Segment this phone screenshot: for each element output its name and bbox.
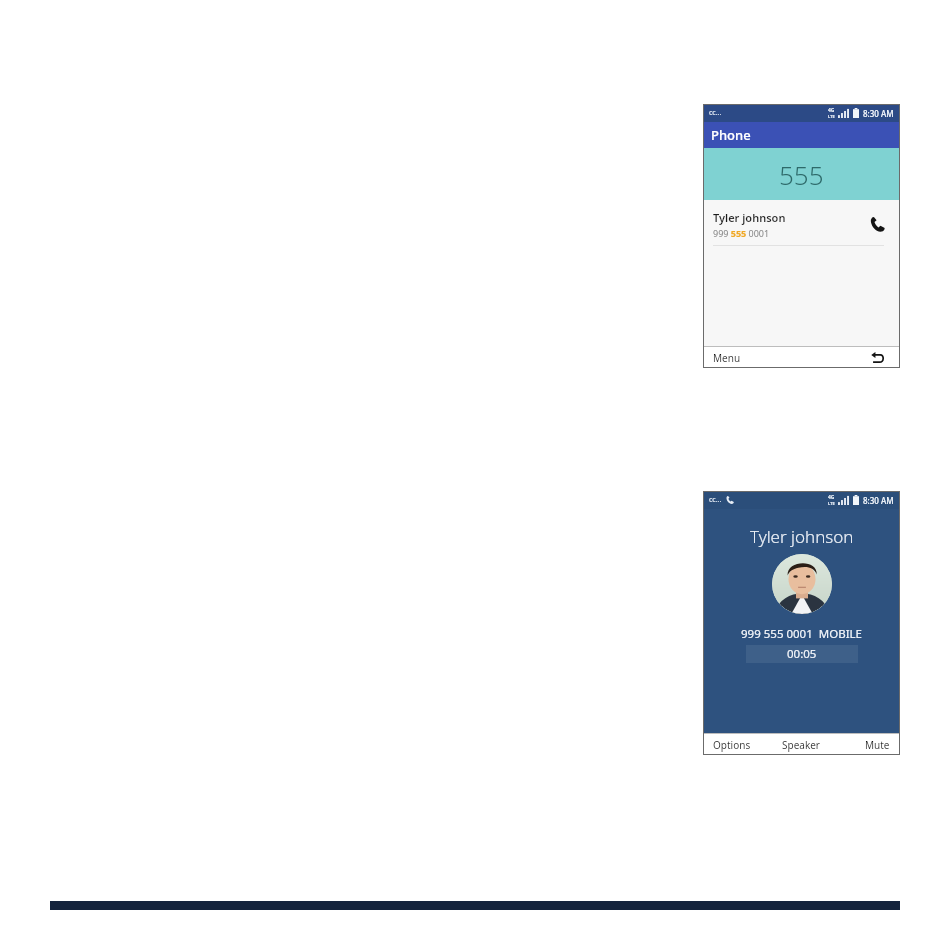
staticText: LTE <box>828 501 835 506</box>
staticText: 8:30 AM <box>863 108 894 119</box>
button[interactable]: 555 <box>703 148 900 200</box>
staticText: Mute <box>865 738 890 752</box>
staticText: Options <box>713 738 751 752</box>
button[interactable]: Speaker <box>768 734 834 755</box>
button[interactable]: Tyler johnson <box>703 203 900 245</box>
staticText: cc... <box>709 108 722 118</box>
staticText: 4G <box>828 494 835 501</box>
staticText: 00:05 <box>787 646 817 662</box>
button[interactable]: Options <box>703 734 768 755</box>
staticText: cc... <box>709 495 722 505</box>
staticText: LTE <box>828 114 835 119</box>
button[interactable]: Back <box>854 347 900 368</box>
staticText: Tyler johnson <box>713 210 786 225</box>
button[interactable]: Menu <box>703 347 854 368</box>
staticText: Speaker <box>782 738 820 752</box>
staticText: Phone <box>711 126 751 144</box>
staticText: 999 555 0001 <box>713 227 770 239</box>
staticText: Menu <box>713 351 741 365</box>
button[interactable]: Phone <box>703 122 900 148</box>
staticText: 4G <box>828 107 835 114</box>
staticText: 999 555 0001 MOBILE <box>741 626 862 642</box>
staticText: 8:30 AM <box>863 495 894 506</box>
staticText: Tyler johnson <box>750 525 854 548</box>
staticText: 555 <box>779 157 824 192</box>
button[interactable]: Mute <box>834 734 900 755</box>
button[interactable]: Call Tyler johnson <box>864 211 890 237</box>
